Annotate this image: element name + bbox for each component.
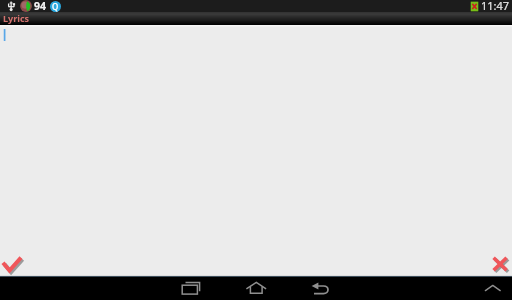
staticText: 94 xyxy=(34,0,47,11)
staticText: 11:47 xyxy=(481,0,510,10)
button[interactable]: Home xyxy=(237,277,276,300)
button[interactable]: Hide navigation bar xyxy=(478,277,508,300)
button[interactable]: Recent apps xyxy=(172,277,210,300)
button[interactable]: Accept xyxy=(0,254,26,274)
staticText: Lyrics xyxy=(3,12,30,24)
button[interactable]: Back xyxy=(302,277,340,300)
button[interactable]: Cancel xyxy=(488,254,512,274)
staticText: Q xyxy=(52,1,59,12)
